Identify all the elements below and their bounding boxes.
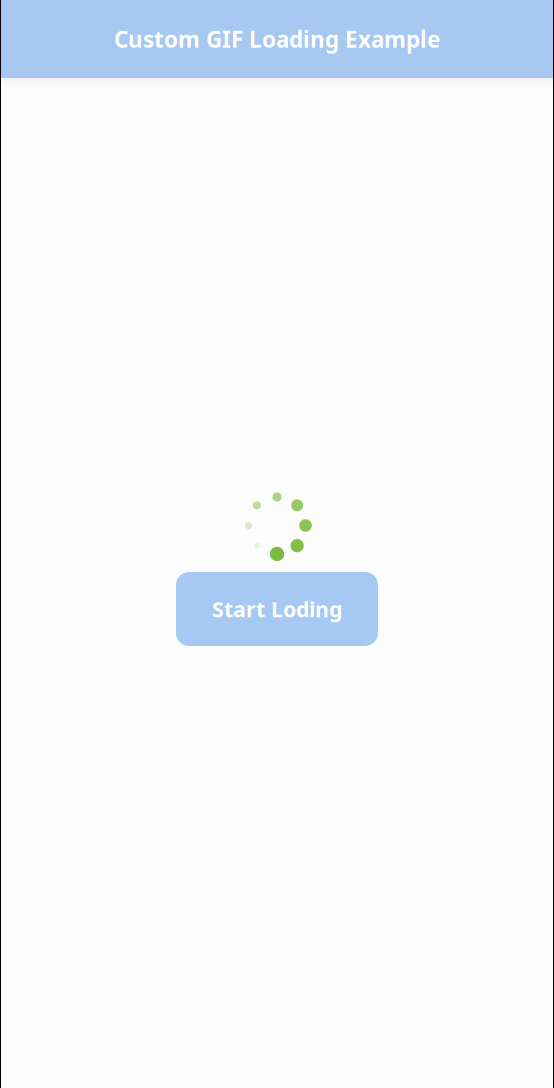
staticText: Start Loding <box>212 595 342 623</box>
button[interactable]: Start Loding <box>176 572 378 646</box>
staticText: Custom GIF Loading Example <box>114 24 440 54</box>
